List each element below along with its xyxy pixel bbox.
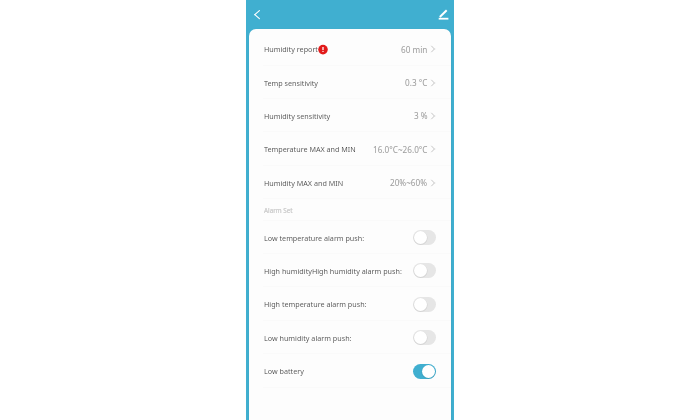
staticText: Low temperature alarm push:: [264, 233, 365, 243]
button[interactable]: Humidity report: [249, 32, 451, 66]
other: Off: [413, 297, 436, 312]
button[interactable]: Humidity MAX and MIN: [249, 166, 451, 199]
button[interactable]: High temperature alarm push:: [249, 287, 451, 321]
button[interactable]: Temperature MAX and MIN: [249, 132, 451, 166]
staticText: Humidity sensitivity: [264, 111, 331, 121]
button[interactable]: Edit: [434, 2, 454, 27]
button[interactable]: Temp sensitivity: [249, 66, 451, 99]
button[interactable]: Humidity sensitivity: [249, 99, 451, 132]
button[interactable]: High humidityHigh humidity alarm push:: [249, 254, 451, 287]
button[interactable]: Low battery: [249, 354, 451, 388]
button[interactable]: Low temperature alarm push:: [249, 221, 451, 254]
staticText: Humidity report: [264, 44, 318, 54]
button[interactable]: Back: [246, 2, 266, 27]
staticText: 16.0°C~26.0°C: [373, 144, 428, 155]
staticText: 0.3 °C: [405, 77, 428, 88]
other: Off: [413, 330, 436, 345]
staticText: Alarm Set: [264, 206, 293, 215]
other: Off: [413, 263, 436, 278]
other: Off: [413, 230, 436, 245]
staticText: 20%~60%: [390, 177, 428, 188]
staticText: Temperature MAX and MIN: [264, 144, 356, 154]
staticText: Low humidity alarm push:: [264, 333, 352, 343]
staticText: High humidityHigh humidity alarm push:: [264, 266, 402, 276]
button[interactable]: Low humidity alarm push:: [249, 321, 451, 354]
staticText: Low battery: [264, 366, 304, 376]
staticText: 3 %: [414, 110, 428, 121]
staticText: Temp sensitivity: [264, 78, 319, 88]
staticText: 60 min: [401, 44, 428, 55]
staticText: High temperature alarm push:: [264, 299, 367, 309]
other: On: [413, 364, 436, 379]
staticText: Humidity MAX and MIN: [264, 178, 344, 188]
